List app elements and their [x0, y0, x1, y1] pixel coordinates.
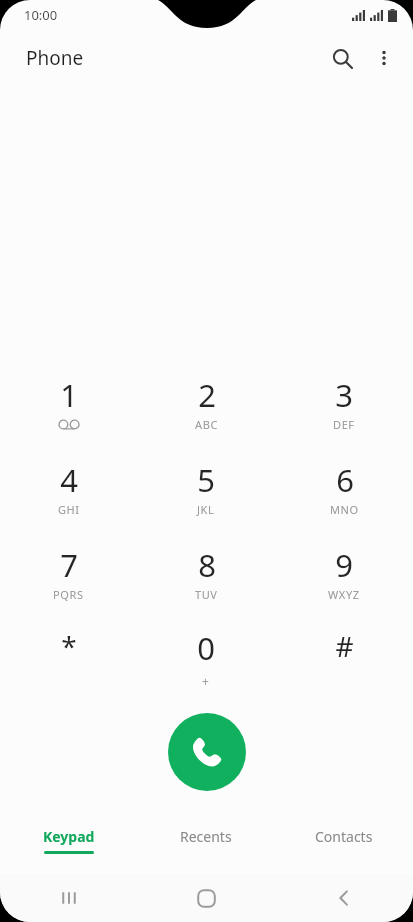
staticText: WXYZ [328, 587, 360, 602]
button[interactable]: 1 [0, 368, 137, 453]
button[interactable]: Recent apps [0, 874, 137, 922]
button[interactable]: 6 [275, 453, 413, 538]
staticText: Contacts [315, 827, 373, 846]
button[interactable]: Home [137, 874, 275, 922]
staticText: Phone [26, 45, 84, 71]
staticText: 5 [197, 459, 215, 501]
button[interactable]: 7 [0, 538, 137, 623]
button[interactable]: 0 [137, 623, 275, 701]
button[interactable]: Contacts [275, 818, 413, 864]
staticText: PQRS [53, 587, 84, 602]
button[interactable]: 5 [137, 453, 275, 538]
button[interactable]: # [275, 623, 413, 701]
staticText: 6 [336, 459, 354, 501]
button[interactable]: * [0, 623, 137, 701]
staticText: JKL [197, 502, 215, 517]
button[interactable]: Keypad [0, 818, 137, 864]
staticText: Recents [180, 827, 232, 846]
staticText: 7 [60, 544, 78, 586]
staticText: 1 [60, 374, 78, 416]
button[interactable]: Search [323, 39, 361, 77]
staticText: 3 [335, 374, 353, 416]
staticText: 2 [198, 374, 216, 416]
staticText: * [61, 627, 77, 665]
staticText: TUV [195, 587, 218, 602]
button[interactable]: 4 [0, 453, 137, 538]
staticText: # [335, 627, 354, 665]
button[interactable]: 3 [275, 368, 413, 453]
staticText: Keypad [43, 827, 95, 846]
button[interactable]: Recents [137, 818, 275, 864]
button[interactable]: 8 [137, 538, 275, 623]
staticText: + [202, 673, 210, 689]
staticText: 4 [60, 459, 78, 501]
button[interactable]: Back [275, 874, 413, 922]
button[interactable]: More options [365, 39, 403, 77]
button[interactable]: 9 [275, 538, 413, 623]
staticText: ABC [195, 417, 218, 432]
staticText: 10:00 [24, 6, 58, 24]
button[interactable]: 2 [137, 368, 275, 453]
staticText: DEF [333, 417, 355, 432]
staticText: 9 [335, 544, 353, 586]
button[interactable]: Call [168, 713, 246, 791]
staticText: 0 [197, 627, 215, 669]
staticText: 8 [198, 544, 216, 586]
staticText: MNO [330, 502, 359, 517]
staticText: GHI [58, 502, 80, 517]
